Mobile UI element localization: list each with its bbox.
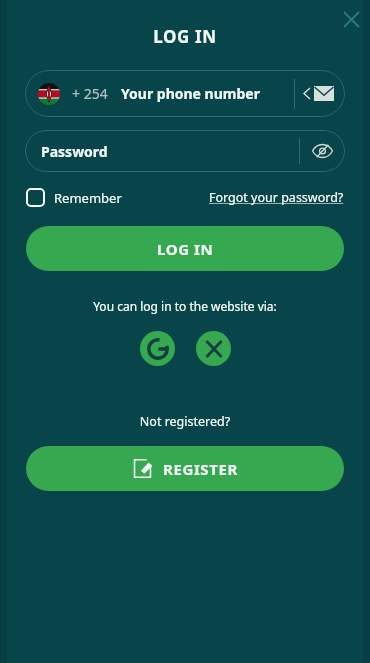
staticText: Password [41, 142, 108, 161]
button[interactable]: Use email instead [303, 70, 334, 117]
staticText: Not registered? [0, 413, 370, 430]
button[interactable]: LOG IN [26, 226, 344, 271]
staticText: Your phone number [121, 84, 260, 103]
button[interactable]: + 254 [25, 70, 345, 117]
staticText: LOG IN [0, 25, 370, 48]
button[interactable]: REGISTER [26, 446, 344, 491]
button[interactable]: Show password [300, 130, 345, 172]
button[interactable]: Password [25, 130, 345, 172]
staticText: You can log in to the website via: [0, 298, 370, 314]
button[interactable]: Remember [26, 188, 122, 207]
button[interactable]: Forgot your password? [209, 189, 344, 206]
button[interactable]: Log in with X [196, 331, 231, 366]
staticText: Remember [54, 189, 122, 207]
button[interactable]: Close [336, 4, 366, 34]
staticText: + 254 [72, 84, 108, 103]
staticText: Forgot your password? [209, 189, 344, 206]
button[interactable]: Log in with Google [140, 331, 175, 366]
staticText: LOG IN [157, 239, 214, 259]
staticText: REGISTER [163, 459, 238, 479]
